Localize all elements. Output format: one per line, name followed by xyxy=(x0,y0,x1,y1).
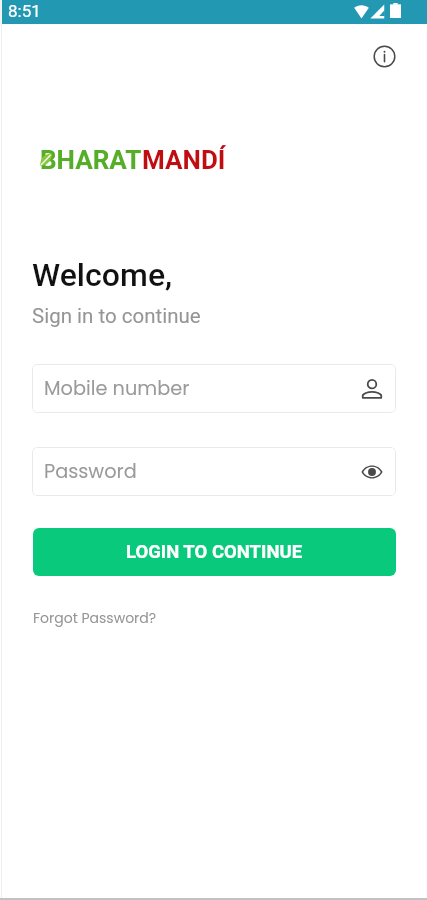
staticText: MANDÍ xyxy=(142,145,226,175)
staticText: Welcome, xyxy=(32,256,173,294)
staticText: Password xyxy=(44,458,361,485)
button[interactable]: Mobile number xyxy=(32,364,396,413)
staticText: BHARAT xyxy=(40,145,142,175)
button[interactable]: Information xyxy=(368,40,400,72)
button[interactable]: Password xyxy=(32,447,396,496)
staticText: Sign in to continue xyxy=(32,304,201,328)
staticText: Mobile number xyxy=(44,375,361,402)
staticText: LOGIN TO CONTINUE xyxy=(126,541,303,563)
button[interactable]: LOGIN TO CONTINUE xyxy=(33,528,396,576)
button[interactable]: Forgot Password? xyxy=(27,604,163,632)
staticText: Forgot Password? xyxy=(33,608,157,628)
staticText: 8:51 xyxy=(8,1,41,21)
